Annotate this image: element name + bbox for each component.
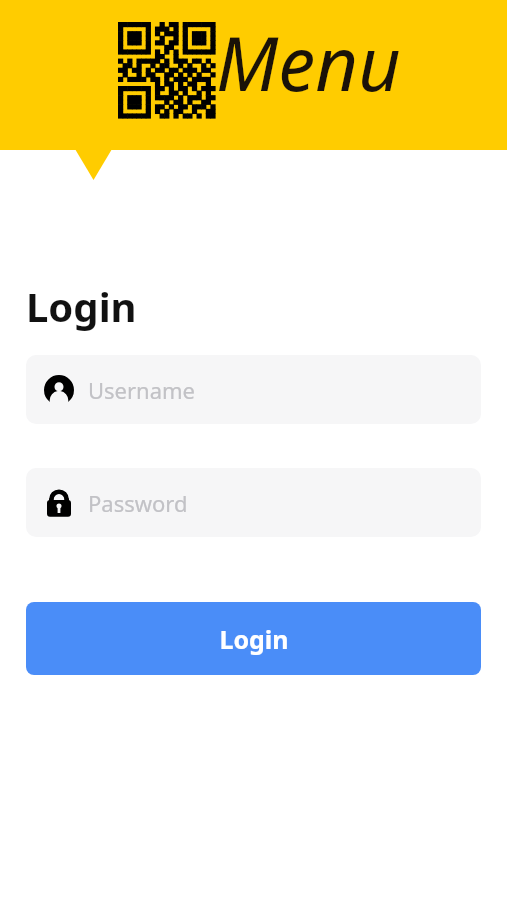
staticText: Password (88, 488, 188, 518)
staticText: Login (219, 622, 289, 656)
staticText: Username (88, 375, 196, 405)
button[interactable]: Password (26, 468, 481, 537)
staticText: Menu (216, 12, 401, 113)
button[interactable]: Username (26, 355, 481, 424)
staticText: Login (26, 279, 137, 333)
button[interactable]: Login (26, 602, 481, 675)
